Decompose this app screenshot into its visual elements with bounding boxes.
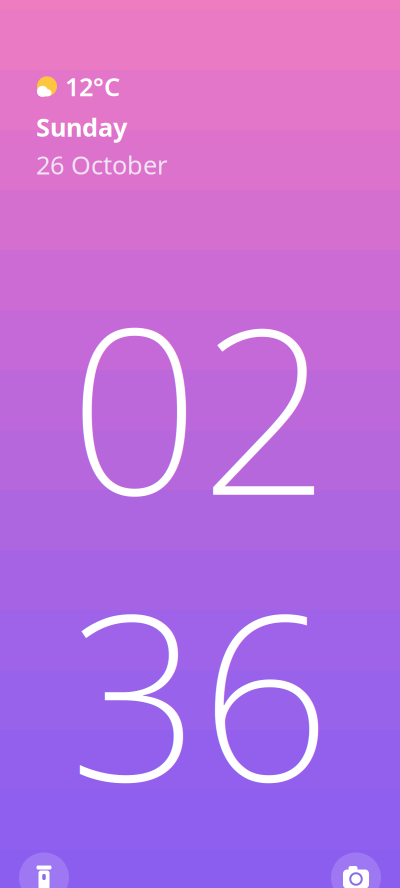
staticText: Sunday: [36, 110, 127, 144]
staticText: 36: [69, 540, 331, 844]
staticText: 26 October: [36, 148, 167, 181]
button[interactable]: Camera: [331, 852, 381, 888]
button[interactable]: Flashlight: [19, 852, 69, 888]
staticText: 12°C: [65, 69, 120, 103]
staticText: 02: [69, 253, 331, 558]
